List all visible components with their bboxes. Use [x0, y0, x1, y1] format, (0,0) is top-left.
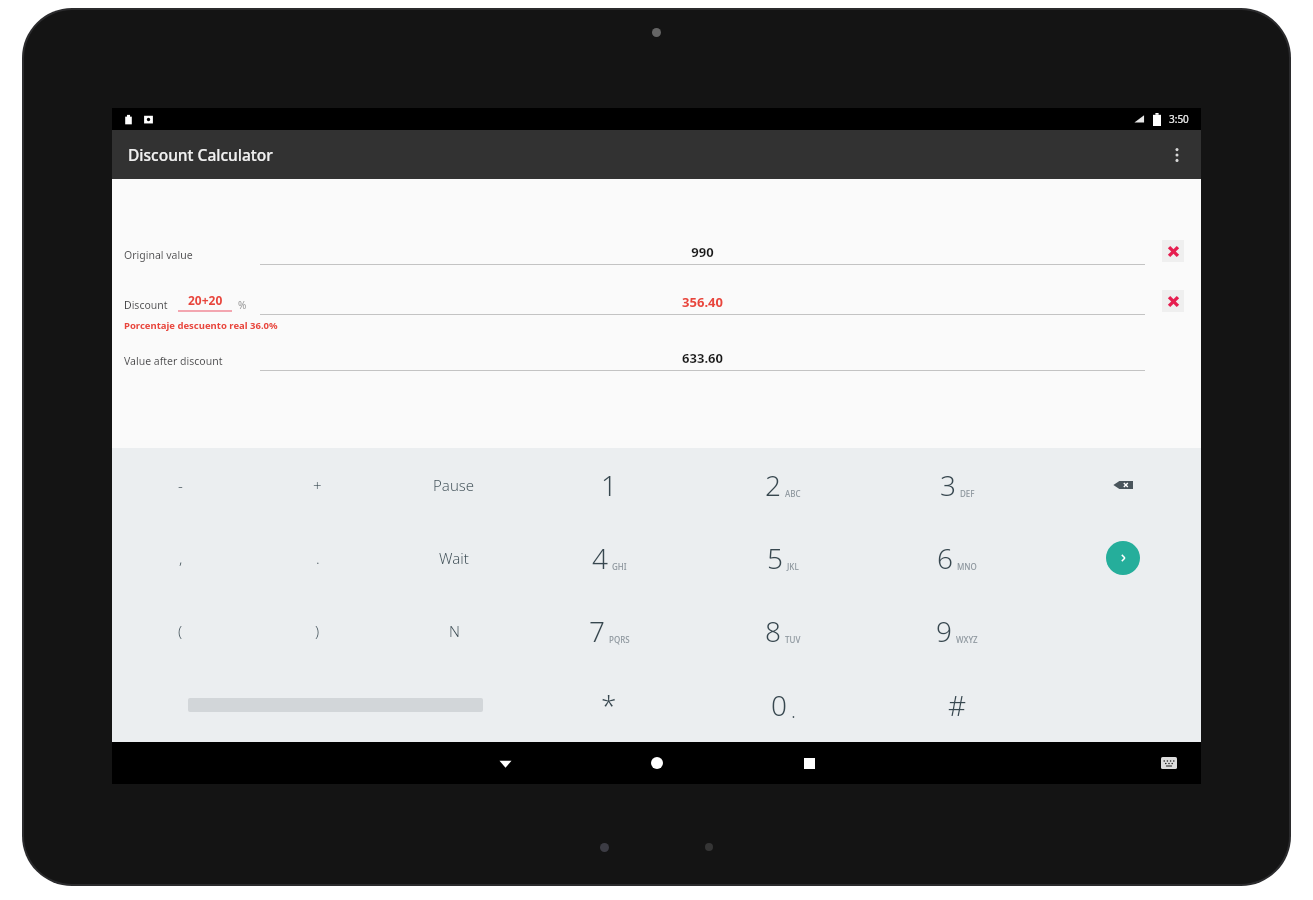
staticText: 3:50: [1169, 112, 1189, 126]
staticText: Pause: [433, 475, 475, 495]
staticText: 2: [765, 466, 781, 504]
staticText: JKL: [787, 561, 799, 572]
button[interactable]: (: [112, 594, 249, 668]
staticText: PQRS: [609, 634, 630, 645]
button[interactable]: Pause: [386, 448, 522, 521]
button[interactable]: #: [870, 668, 1044, 742]
staticText: Porcentaje descuento real 36.0%: [124, 319, 278, 332]
button[interactable]: +: [249, 448, 386, 521]
staticText: +: [313, 475, 322, 495]
staticText: *: [601, 686, 617, 724]
button[interactable]: Home: [636, 742, 678, 784]
button[interactable]: 7: [522, 594, 696, 668]
staticText: ABC: [785, 488, 801, 499]
staticText: Value after discount: [124, 354, 223, 368]
button[interactable]: ): [249, 594, 386, 668]
button[interactable]: Enter: [1106, 541, 1140, 575]
staticText: (: [178, 621, 183, 641]
staticText: 5: [767, 539, 783, 577]
staticText: TUV: [785, 634, 801, 645]
button[interactable]: Clear Discount: [1162, 290, 1184, 312]
button[interactable]: Wait: [386, 521, 522, 594]
staticText: DEF: [960, 488, 975, 499]
staticText: Wait: [439, 548, 469, 568]
staticText: 633.60: [260, 349, 1145, 367]
staticText: .: [791, 697, 796, 724]
button[interactable]: Space: [112, 668, 522, 742]
button[interactable]: 633.60: [260, 349, 1145, 371]
staticText: -: [178, 475, 183, 495]
button[interactable]: Clear Original value: [1162, 240, 1184, 262]
staticText: Original value: [124, 248, 193, 262]
button[interactable]: 0: [696, 668, 870, 742]
staticText: MNO: [957, 561, 977, 572]
staticText: 8: [765, 612, 781, 650]
button[interactable]: More options: [1153, 130, 1201, 179]
button[interactable]: Recent apps: [788, 742, 830, 784]
button[interactable]: 356.40: [260, 293, 1145, 315]
staticText: WXYZ: [956, 634, 978, 645]
staticText: 20+20: [188, 292, 223, 308]
button[interactable]: N: [386, 594, 522, 668]
staticText: 1: [601, 466, 617, 504]
button[interactable]: Change keyboard: [1153, 747, 1185, 779]
staticText: N: [449, 621, 460, 641]
staticText: ): [315, 621, 320, 641]
staticText: Discount Calculator: [128, 144, 273, 165]
button[interactable]: 6: [870, 521, 1044, 594]
staticText: 4: [592, 539, 608, 577]
staticText: 7: [589, 612, 605, 650]
staticText: Discount: [124, 298, 168, 312]
staticText: 9: [936, 612, 952, 650]
staticText: .: [316, 548, 320, 568]
staticText: 0: [771, 686, 787, 724]
staticText: ,: [179, 548, 183, 568]
button[interactable]: 990: [260, 243, 1145, 265]
staticText: #: [948, 686, 967, 724]
staticText: %: [238, 298, 247, 312]
button[interactable]: Backspace: [1102, 464, 1144, 506]
button[interactable]: 2: [696, 448, 870, 521]
button[interactable]: 3: [870, 448, 1044, 521]
staticText: GHI: [612, 561, 627, 572]
button[interactable]: Back: [484, 742, 526, 784]
staticText: 6: [937, 539, 953, 577]
staticText: 990: [260, 243, 1145, 261]
button[interactable]: *: [522, 668, 696, 742]
staticText: 356.40: [260, 293, 1145, 311]
button[interactable]: 8: [696, 594, 870, 668]
staticText: 3: [940, 466, 956, 504]
button[interactable]: 4: [522, 521, 696, 594]
button[interactable]: 1: [522, 448, 696, 521]
button[interactable]: 9: [870, 594, 1044, 668]
button[interactable]: 5: [696, 521, 870, 594]
